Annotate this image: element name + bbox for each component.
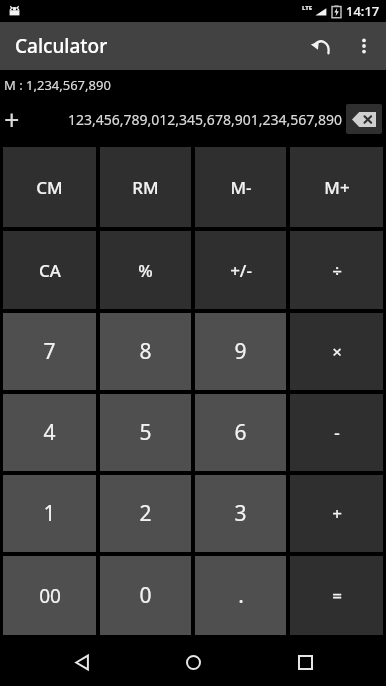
- button[interactable]: CA: [3, 231, 96, 309]
- staticText: M : 1,234,567,890: [4, 76, 111, 94]
- button[interactable]: Recent apps: [275, 638, 335, 686]
- staticText: M+: [324, 176, 350, 199]
- button[interactable]: 0: [100, 556, 191, 635]
- button[interactable]: Backspace: [346, 104, 382, 134]
- staticText: 7: [43, 337, 56, 366]
- staticText: 0: [139, 581, 152, 610]
- button[interactable]: 8: [100, 313, 191, 390]
- staticText: 14:17: [346, 2, 380, 20]
- staticText: +: [332, 502, 342, 525]
- staticText: +: [4, 101, 20, 138]
- staticText: 6: [234, 418, 247, 447]
- button[interactable]: 5: [100, 394, 191, 471]
- staticText: 2: [139, 499, 152, 528]
- staticText: LTE: [302, 4, 313, 12]
- staticText: CM: [36, 176, 63, 199]
- button[interactable]: Back: [52, 638, 112, 686]
- button[interactable]: M-: [195, 147, 286, 227]
- staticText: M-: [230, 176, 252, 199]
- button[interactable]: RM: [100, 147, 191, 227]
- button[interactable]: 6: [195, 394, 286, 471]
- staticText: 4: [43, 418, 56, 447]
- button[interactable]: Home: [163, 638, 223, 686]
- staticText: RM: [132, 176, 159, 199]
- button[interactable]: ×: [290, 313, 383, 390]
- staticText: 1: [43, 499, 56, 528]
- staticText: CA: [39, 259, 61, 282]
- button[interactable]: CM: [3, 147, 96, 227]
- button[interactable]: +: [290, 475, 383, 552]
- button[interactable]: +/-: [195, 231, 286, 309]
- staticText: 5: [139, 418, 152, 447]
- button[interactable]: 1: [3, 475, 96, 552]
- button[interactable]: -: [290, 394, 383, 471]
- button[interactable]: 4: [3, 394, 96, 471]
- button[interactable]: ÷: [290, 231, 383, 309]
- staticText: ×: [332, 340, 342, 363]
- button[interactable]: 9: [195, 313, 286, 390]
- staticText: 9: [234, 337, 247, 366]
- button[interactable]: 7: [3, 313, 96, 390]
- staticText: %: [138, 259, 153, 282]
- staticText: 3: [234, 499, 247, 528]
- staticText: 123,456,789,012,345,678,901,234,567,890: [22, 110, 342, 129]
- button[interactable]: 3: [195, 475, 286, 552]
- button[interactable]: 2: [100, 475, 191, 552]
- button[interactable]: .: [195, 556, 286, 635]
- staticText: +/-: [230, 259, 252, 282]
- button[interactable]: =: [290, 556, 383, 635]
- staticText: 8: [139, 337, 152, 366]
- staticText: -: [334, 421, 340, 444]
- staticText: 00: [39, 583, 61, 609]
- button[interactable]: M+: [290, 147, 383, 227]
- staticText: =: [332, 584, 342, 607]
- staticText: .: [238, 581, 244, 610]
- staticText: ÷: [332, 259, 342, 282]
- button[interactable]: Undo: [298, 24, 342, 68]
- button[interactable]: More options: [342, 24, 386, 68]
- staticText: Calculator: [15, 33, 108, 59]
- button[interactable]: 00: [3, 556, 96, 635]
- button[interactable]: %: [100, 231, 191, 309]
